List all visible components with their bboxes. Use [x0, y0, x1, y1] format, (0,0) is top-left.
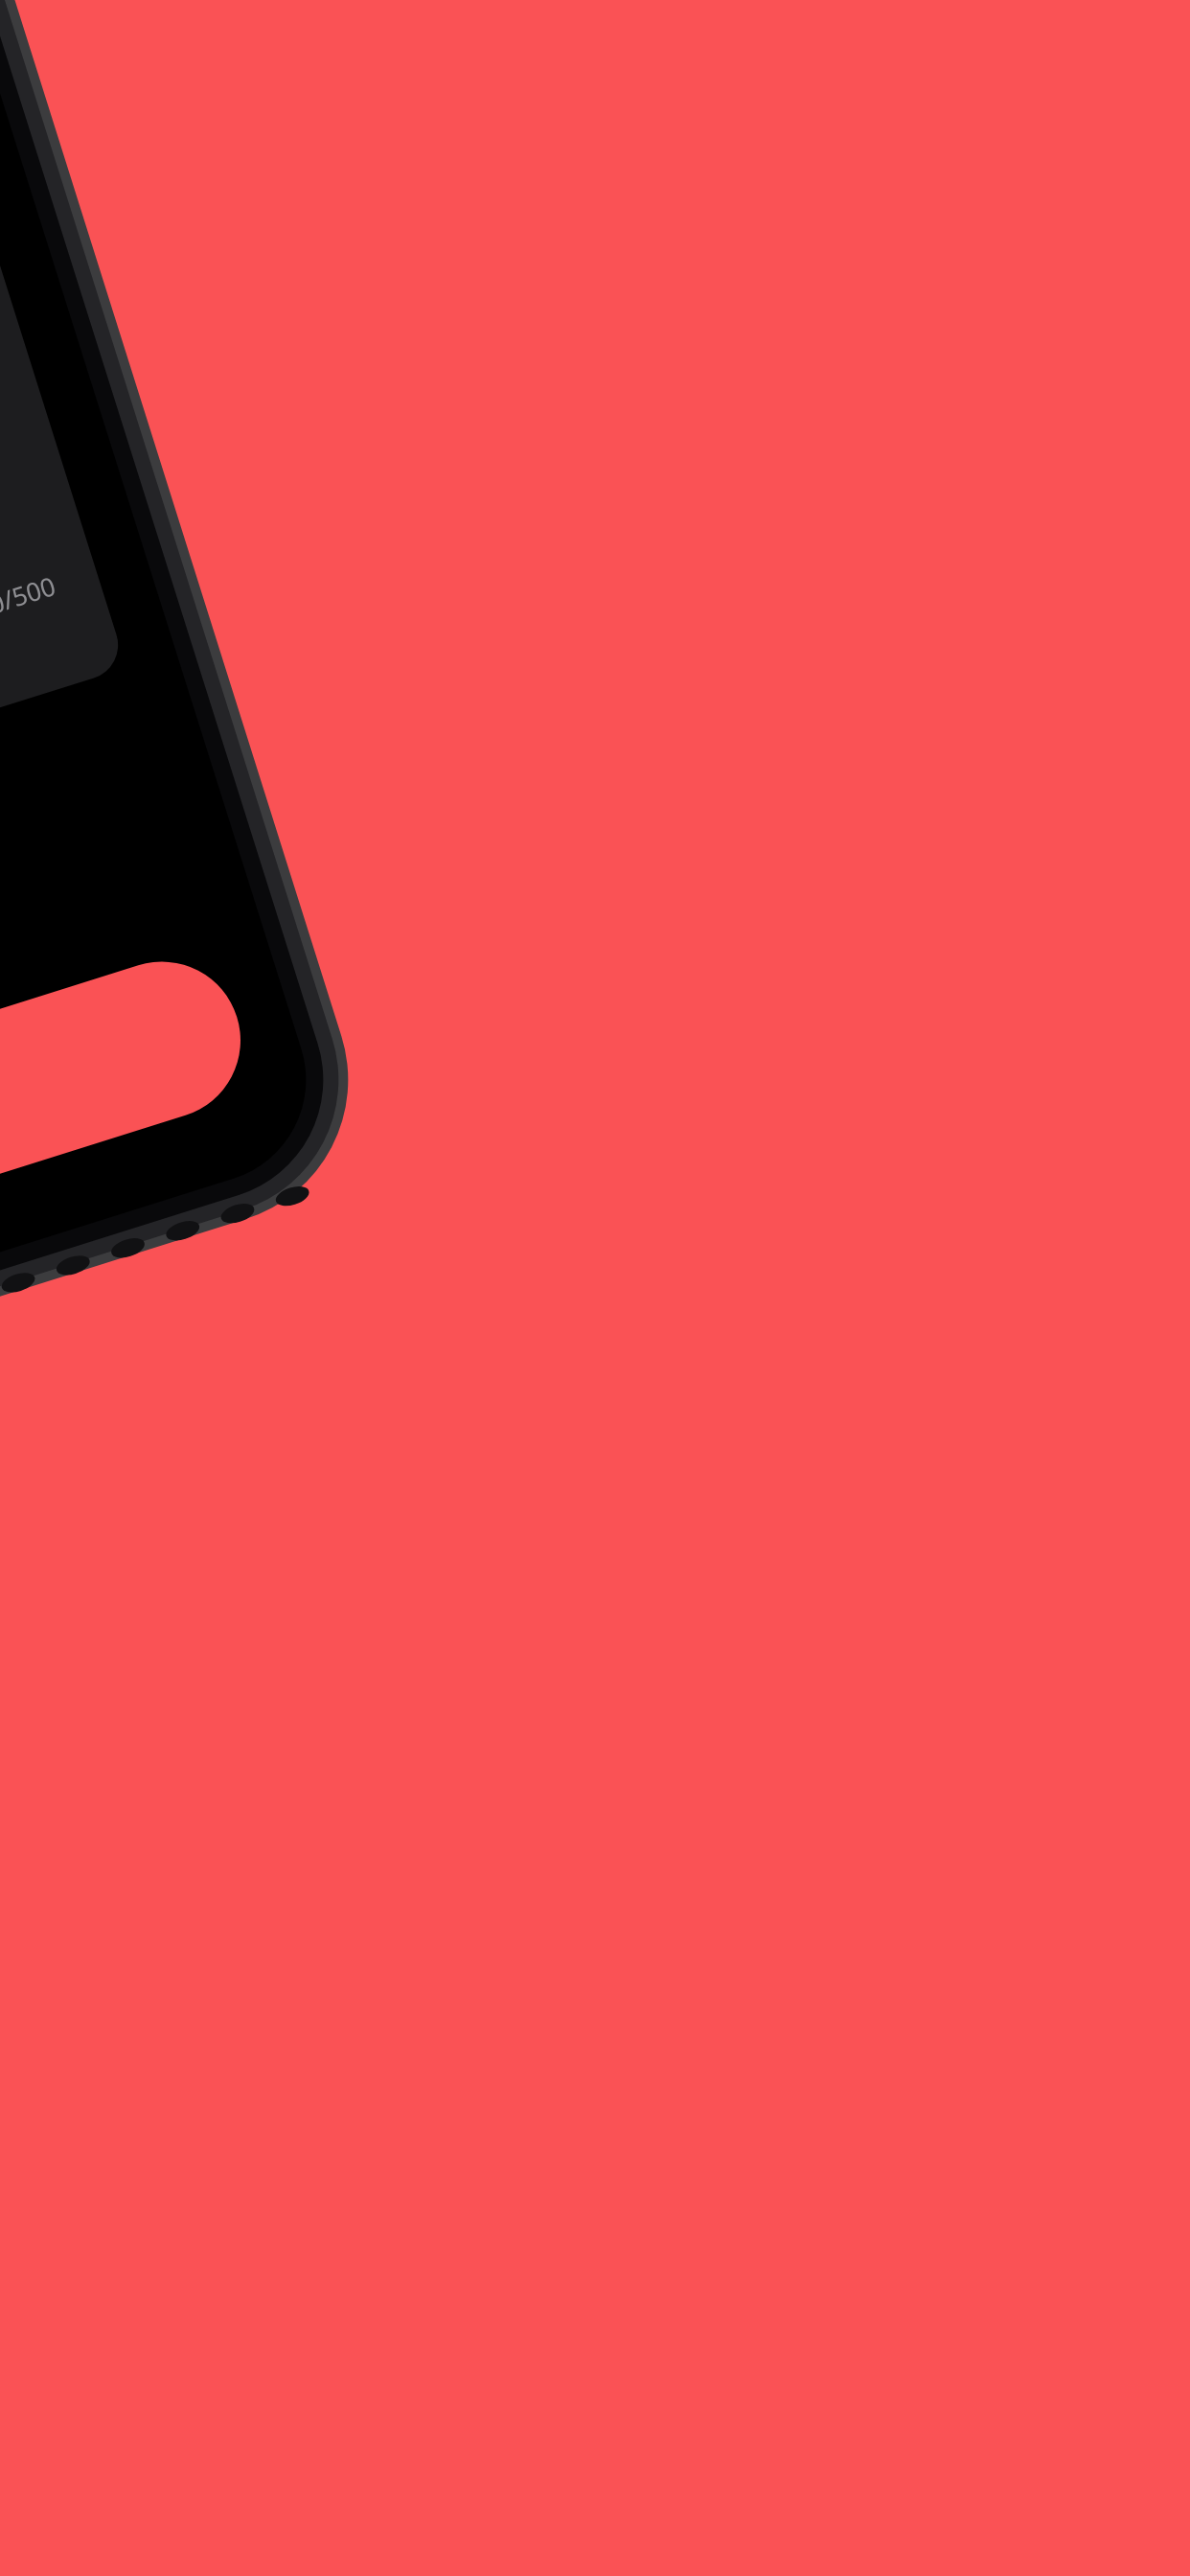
button[interactable]: Character creation screen shown on a til… — [0, 0, 1190, 2576]
